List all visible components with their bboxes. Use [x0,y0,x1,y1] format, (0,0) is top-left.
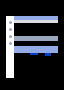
button[interactable]: Nav 1 [7,26,13,32]
button[interactable]: Nav 2 [7,33,13,39]
button[interactable]: Nav 0 [7,19,13,25]
button[interactable]: Nav 3 [7,40,13,46]
